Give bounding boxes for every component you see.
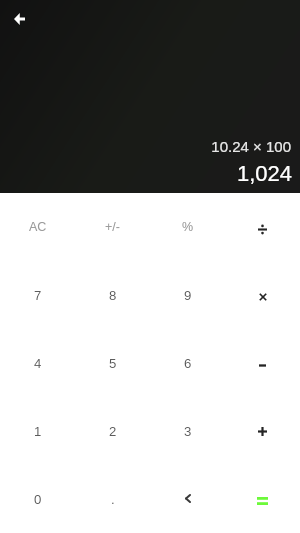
staticText: 4 bbox=[34, 356, 42, 371]
staticText: 5 bbox=[109, 356, 117, 371]
button[interactable]: +/- bbox=[75, 193, 150, 261]
staticText: . bbox=[111, 492, 115, 507]
staticText: 6 bbox=[184, 356, 192, 371]
button[interactable]: 1 bbox=[0, 397, 75, 465]
button[interactable]: Backspace bbox=[150, 465, 225, 533]
button[interactable]: 6 bbox=[150, 329, 225, 397]
button[interactable]: 9 bbox=[150, 261, 225, 329]
staticText: 10.24 × 100 bbox=[211, 138, 291, 155]
button[interactable]: Minus bbox=[225, 329, 300, 397]
button[interactable]: 5 bbox=[75, 329, 150, 397]
staticText: 7 bbox=[34, 288, 42, 303]
staticText: 1,024 bbox=[236, 161, 292, 186]
button[interactable]: % bbox=[150, 193, 225, 261]
staticText: 3 bbox=[184, 424, 192, 439]
button[interactable]: Plus bbox=[225, 397, 300, 465]
staticText: % bbox=[182, 220, 194, 234]
staticText: 8 bbox=[109, 288, 117, 303]
button[interactable]: Equals bbox=[225, 465, 300, 533]
staticText: AC bbox=[29, 220, 47, 234]
button[interactable]: Back bbox=[8, 7, 31, 30]
button[interactable]: 0 bbox=[0, 465, 75, 533]
staticText: 1 bbox=[34, 424, 42, 439]
button[interactable]: AC bbox=[0, 193, 75, 261]
button[interactable]: 4 bbox=[0, 329, 75, 397]
button[interactable]: Multiply bbox=[225, 261, 300, 329]
button[interactable]: 7 bbox=[0, 261, 75, 329]
staticText: +/- bbox=[105, 220, 120, 234]
staticText: 2 bbox=[109, 424, 117, 439]
button[interactable]: Divide bbox=[225, 193, 300, 261]
staticText: 9 bbox=[184, 288, 192, 303]
staticText: 0 bbox=[34, 492, 42, 507]
button[interactable]: 3 bbox=[150, 397, 225, 465]
button[interactable]: 8 bbox=[75, 261, 150, 329]
button[interactable]: 2 bbox=[75, 397, 150, 465]
